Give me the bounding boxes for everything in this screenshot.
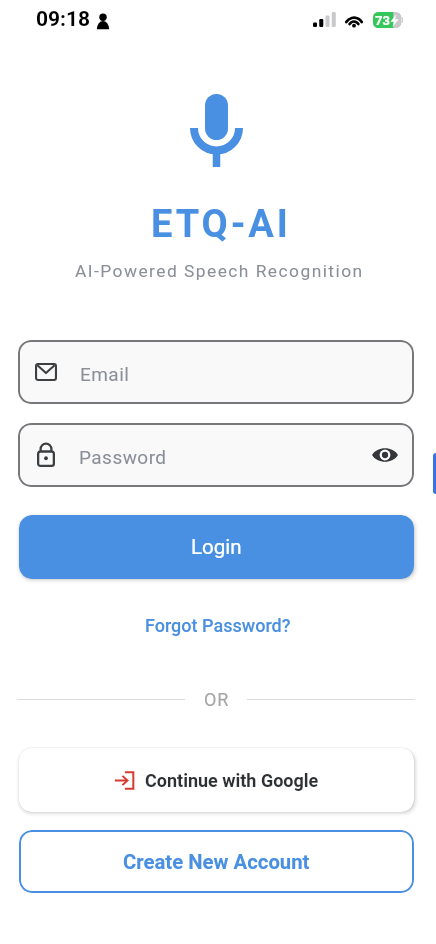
- staticText: 09:18: [36, 7, 91, 32]
- staticText: Password: [79, 446, 167, 468]
- staticText: Forgot Password?: [145, 615, 291, 636]
- staticText: Email: [80, 363, 130, 385]
- other: Email: [35, 363, 57, 381]
- staticText: 73: [375, 13, 390, 28]
- staticText: Continue with Google: [145, 770, 319, 791]
- staticText: Login: [191, 535, 242, 559]
- staticText: ETQ-AI: [151, 202, 291, 247]
- button[interactable]: Forgot Password?: [137, 609, 299, 642]
- button[interactable]: Password: [18, 423, 414, 487]
- staticText: Create New Account: [123, 850, 310, 874]
- staticText: OR: [204, 689, 230, 710]
- button[interactable]: Email: [18, 340, 414, 404]
- button[interactable]: Accessibility handle: [433, 453, 436, 494]
- button[interactable]: Continue with Google: [19, 748, 414, 812]
- staticText: AI-Powered Speech Recognition: [75, 261, 364, 281]
- button[interactable]: Login: [19, 515, 414, 579]
- other: Password: [37, 443, 55, 467]
- button[interactable]: Show password: [370, 444, 400, 466]
- button[interactable]: Create New Account: [19, 830, 414, 893]
